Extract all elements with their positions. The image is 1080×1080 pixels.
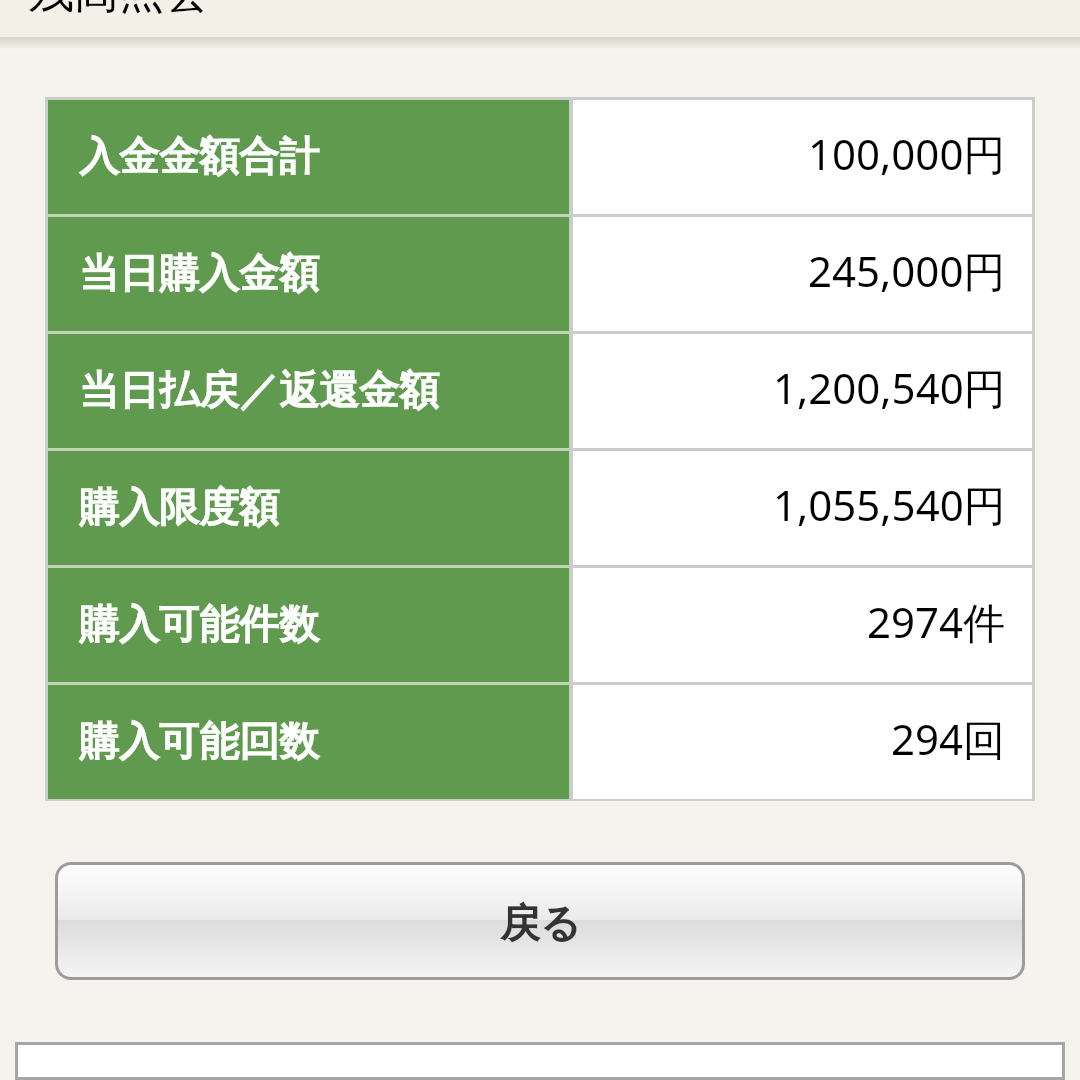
staticText: 当日払戻／返還金額 bbox=[79, 365, 439, 415]
button[interactable]: 当日払戻／返還金額 bbox=[48, 334, 1032, 448]
staticText: 2974件 bbox=[867, 593, 1006, 650]
button[interactable]: 当日購入金額 bbox=[48, 217, 1032, 331]
staticText: 294回 bbox=[891, 710, 1006, 767]
staticText: 当日購入金額 bbox=[79, 248, 319, 298]
button[interactable]: 購入限度額 bbox=[48, 451, 1032, 565]
staticText: 戻る bbox=[500, 898, 581, 948]
button[interactable]: 入金金額合計 bbox=[48, 100, 1032, 214]
staticText: 100,000円 bbox=[808, 125, 1006, 182]
staticText: 入金金額合計 bbox=[79, 131, 319, 181]
button[interactable]: 戻る bbox=[58, 865, 1022, 977]
staticText: 購入可能回数 bbox=[79, 716, 319, 766]
staticText: 購入限度額 bbox=[79, 482, 279, 532]
button[interactable]: 残高照会 bbox=[0, 0, 1080, 37]
staticText: 購入可能件数 bbox=[79, 599, 319, 649]
button[interactable]: 購入可能回数 bbox=[48, 685, 1032, 799]
button[interactable]: 購入可能件数 bbox=[48, 568, 1032, 682]
staticText: 1,055,540円 bbox=[773, 476, 1006, 533]
staticText: 1,200,540円 bbox=[773, 359, 1006, 416]
staticText: 残高照会 bbox=[29, 0, 209, 21]
staticText: 245,000円 bbox=[808, 242, 1006, 299]
